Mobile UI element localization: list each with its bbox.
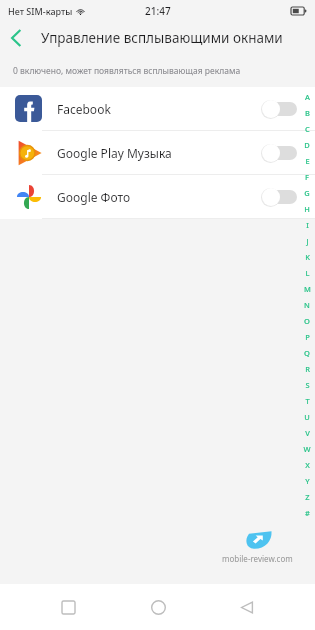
button[interactable]: A <box>299 89 315 521</box>
staticText: N <box>304 300 310 310</box>
staticText: G <box>304 188 310 198</box>
staticText: W <box>303 444 311 454</box>
staticText: Управление всплывающими окнами <box>41 29 283 47</box>
button[interactable] <box>261 142 297 164</box>
staticText: C <box>305 124 310 134</box>
staticText: V <box>305 428 310 438</box>
staticText: S <box>305 380 310 390</box>
staticText: Z <box>305 492 310 502</box>
staticText: I <box>306 220 309 230</box>
button[interactable] <box>261 98 297 120</box>
staticText: O <box>304 316 310 326</box>
staticText: A <box>305 92 310 102</box>
staticText: M <box>304 284 311 294</box>
staticText: F <box>305 172 309 182</box>
button[interactable]: Recent apps <box>46 585 90 629</box>
staticText: E <box>305 156 310 166</box>
staticText: 0 включено, может появляться всплывающая… <box>13 65 241 77</box>
button[interactable] <box>261 186 297 208</box>
button[interactable]: Back <box>225 585 269 629</box>
staticText: H <box>304 204 310 214</box>
staticText: # <box>305 508 310 518</box>
staticText: P <box>305 332 310 342</box>
staticText: B <box>305 108 310 118</box>
staticText: 21:47 <box>145 4 171 18</box>
button[interactable]: Home <box>136 585 180 629</box>
staticText: Google Play Музыка <box>57 145 261 161</box>
staticText: Google Фото <box>57 189 261 205</box>
button[interactable]: Facebook <box>0 87 315 130</box>
button[interactable]: Back <box>0 22 32 54</box>
staticText: mobile-review.com <box>222 553 293 564</box>
staticText: Нет SIM-карты <box>8 5 73 17</box>
staticText: T <box>305 396 310 406</box>
staticText: Facebook <box>57 101 261 117</box>
staticText: R <box>305 364 310 374</box>
staticText: Y <box>305 476 310 486</box>
staticText: U <box>304 412 310 422</box>
staticText: Q <box>304 348 310 358</box>
staticText: L <box>305 268 310 278</box>
staticText: X <box>305 460 310 470</box>
staticText: D <box>304 140 310 150</box>
staticText: J <box>306 236 309 246</box>
button[interactable]: Google Фото <box>0 175 315 218</box>
button[interactable]: Google Play Музыка <box>0 131 315 174</box>
staticText: K <box>305 252 310 262</box>
